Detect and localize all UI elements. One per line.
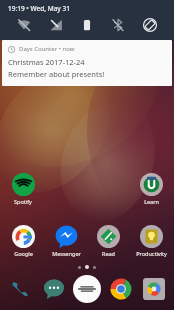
button[interactable]: Productivity — [134, 225, 168, 257]
staticText: Messenger — [52, 250, 81, 257]
button[interactable]: Wi-Fi off — [11, 13, 37, 37]
button[interactable]: Bluetooth off — [105, 13, 131, 37]
button[interactable]: Camera — [139, 274, 169, 304]
staticText: 19:19 • Wed, May 31 — [8, 4, 70, 13]
button[interactable]: Days Counter • now — [2, 40, 172, 86]
staticText: Google — [14, 250, 33, 257]
staticText: Remember about presents! — [8, 69, 105, 79]
button[interactable]: Auto rotate — [137, 13, 163, 37]
staticText: Days Counter • now — [19, 45, 75, 53]
button[interactable]: Google — [6, 225, 40, 257]
staticText: Read — [102, 250, 115, 257]
button[interactable]: All apps — [72, 274, 102, 304]
button[interactable]: Messages — [39, 274, 69, 304]
button[interactable]: Messenger — [49, 225, 83, 257]
button[interactable]: Learn — [134, 173, 168, 205]
staticText: Productivity — [136, 250, 167, 257]
button[interactable]: Battery — [74, 13, 100, 37]
staticText: Learn — [144, 198, 159, 205]
button[interactable]: Phone — [5, 274, 35, 304]
staticText: Spotify — [14, 198, 32, 205]
staticText: Christmas 2017-12-24 — [8, 57, 85, 67]
button[interactable]: Mobile data — [43, 13, 69, 37]
button[interactable]: Chrome — [106, 274, 136, 304]
button[interactable]: Read — [91, 225, 125, 257]
button[interactable]: Spotify — [6, 173, 40, 205]
